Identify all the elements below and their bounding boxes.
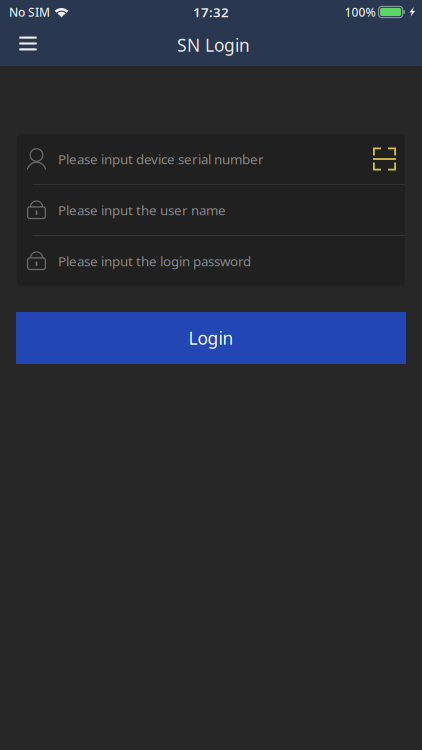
button[interactable]: Menu <box>5 24 51 66</box>
staticText: Login <box>188 326 233 349</box>
staticText: Please input device serial number <box>58 150 264 168</box>
button[interactable]: Login <box>16 312 406 364</box>
staticText: 100% <box>345 4 376 20</box>
staticText: Please input the login password <box>58 252 251 270</box>
button[interactable]: Scan QR code <box>373 147 396 170</box>
staticText: Please input the user name <box>58 201 226 219</box>
staticText: SN Login <box>177 33 250 56</box>
staticText: No SIM <box>9 4 50 20</box>
staticText: 17:32 <box>193 3 229 21</box>
